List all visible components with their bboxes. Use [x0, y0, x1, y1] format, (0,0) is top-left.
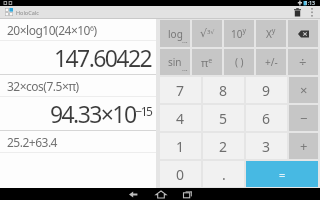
button[interactable]: 8 [203, 77, 244, 103]
button[interactable]: 5 [203, 105, 244, 131]
button[interactable]: 6 [246, 105, 287, 131]
button[interactable]: Xy [256, 20, 286, 47]
button[interactable]: 2 [203, 133, 244, 159]
staticText: πe [201, 55, 213, 70]
staticText: × [300, 81, 308, 99]
staticText: 4 [176, 109, 185, 128]
button[interactable]: 94.33×10−15 [0, 97, 156, 130]
staticText: 147.60422 [54, 42, 152, 73]
button[interactable]: 9 [246, 77, 287, 103]
button[interactable] [120, 188, 147, 200]
button[interactable]: 7 [160, 77, 201, 103]
staticText: ( ) [235, 55, 244, 69]
button[interactable] [288, 6, 306, 18]
staticText: 8 [219, 81, 228, 100]
button[interactable] [174, 188, 201, 200]
staticText: √3√ [200, 27, 215, 40]
staticText: log [168, 27, 183, 41]
button[interactable]: = [246, 161, 318, 187]
button[interactable] [288, 20, 318, 47]
staticText: 1:13 [305, 0, 315, 6]
button[interactable]: log [160, 20, 190, 47]
button[interactable]: 1 [160, 133, 201, 159]
staticText: ... [182, 36, 188, 46]
button[interactable]: 0 [160, 161, 201, 187]
button[interactable]: √3√ [192, 20, 222, 47]
button[interactable]: + [289, 133, 318, 159]
staticText: 2 [219, 137, 228, 156]
staticText: 3 [262, 137, 271, 156]
button[interactable] [306, 6, 318, 18]
staticText: 0 [176, 165, 185, 184]
staticText: 20×log10(24×106) [7, 22, 97, 38]
staticText: 32×cos(7.5×π) [7, 78, 79, 94]
staticText: 7 [176, 81, 185, 100]
button[interactable]: ( ) [224, 49, 254, 75]
button[interactable]: . [203, 161, 244, 187]
staticText: 10y [231, 26, 247, 41]
staticText: sin [168, 55, 182, 69]
staticText: Xy [266, 26, 276, 41]
staticText: 5 [219, 109, 228, 128]
button[interactable]: × [289, 77, 318, 103]
button[interactable]: 25.2+63.4 [0, 131, 156, 152]
button[interactable]: 10y [224, 20, 254, 47]
button[interactable]: 3 [246, 133, 287, 159]
button[interactable]: +/- [256, 49, 286, 75]
staticText: 1 [176, 137, 185, 156]
button[interactable]: sin [160, 49, 190, 75]
button[interactable]: ÷ [288, 49, 318, 75]
button[interactable]: 4 [160, 105, 201, 131]
button[interactable]: 20×log10(24×106) [0, 19, 156, 40]
button[interactable]: 32×cos(7.5×π) [0, 75, 156, 96]
staticText: . [222, 165, 226, 184]
staticText: ÷ [299, 53, 307, 71]
staticText: 9 [262, 81, 271, 100]
staticText: = [279, 167, 286, 182]
staticText: − [300, 109, 308, 127]
staticText: ... [182, 64, 188, 74]
staticText: 6 [262, 109, 271, 128]
button[interactable]: 147.60422 [0, 41, 156, 74]
button[interactable]: − [289, 105, 318, 131]
staticText: HoloCalc [16, 9, 39, 16]
staticText: 94.33×10−15 [50, 98, 152, 129]
staticText: + [300, 137, 308, 155]
staticText: 25.2+63.4 [7, 134, 57, 150]
button[interactable]: πe [192, 49, 222, 75]
button[interactable] [147, 188, 174, 200]
staticText: +/- [265, 55, 278, 69]
